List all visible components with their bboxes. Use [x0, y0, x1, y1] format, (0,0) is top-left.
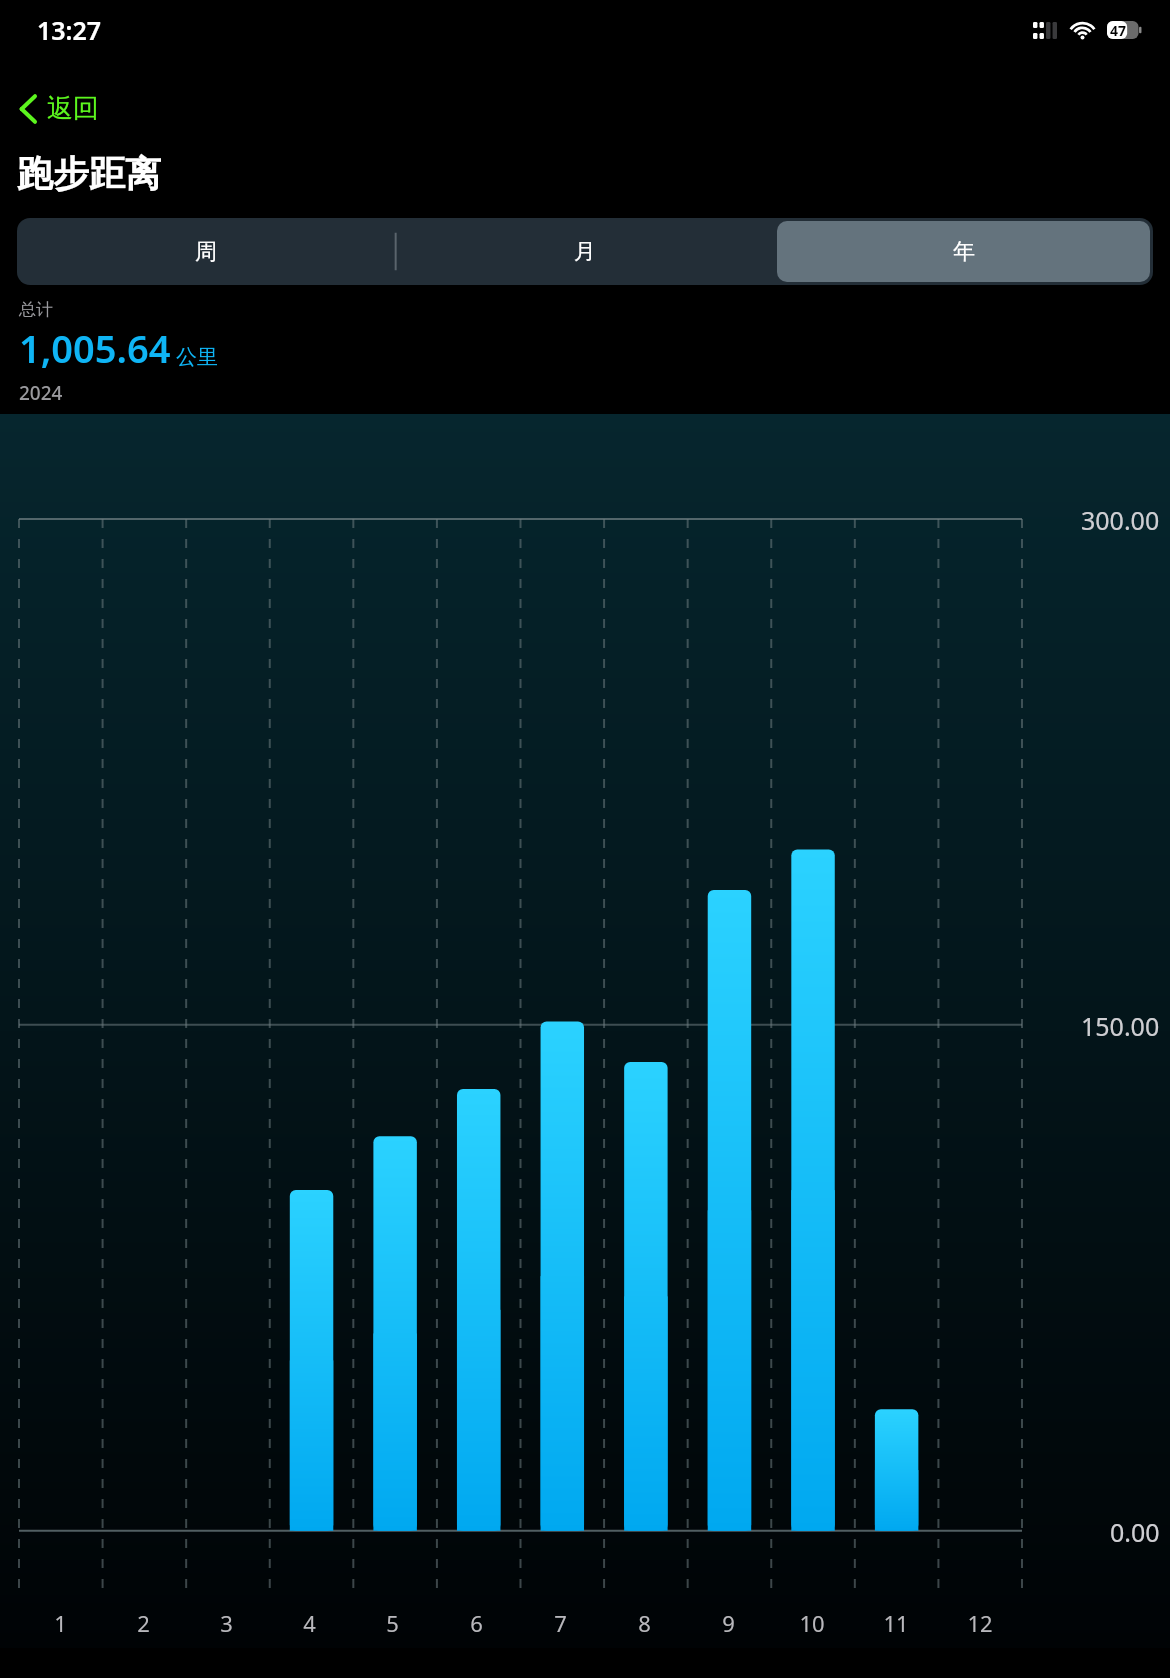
staticText: 3	[220, 1608, 233, 1638]
staticText: 1	[54, 1608, 67, 1638]
staticText: 1,005.64	[19, 322, 171, 374]
staticText: 12	[967, 1608, 993, 1638]
staticText: 5	[386, 1608, 399, 1638]
staticText: 47	[1110, 21, 1127, 39]
staticText: 公里	[176, 344, 218, 370]
staticText: 6	[470, 1608, 483, 1638]
staticText: 2	[137, 1608, 150, 1638]
staticText: 150.00	[1081, 1009, 1160, 1043]
staticText: 7	[554, 1608, 567, 1638]
staticText: 月	[574, 238, 596, 266]
button[interactable]: 月	[398, 221, 771, 282]
staticText: 13:27	[37, 13, 102, 47]
staticText: 年	[953, 238, 975, 266]
staticText: 2024	[19, 380, 63, 406]
button[interactable]: 年	[777, 221, 1150, 282]
staticText: 跑步距离	[17, 151, 161, 196]
button[interactable]: 返回	[10, 88, 107, 129]
staticText: 11	[883, 1608, 909, 1638]
staticText: 10	[799, 1608, 825, 1638]
staticText: 300.00	[1081, 503, 1160, 537]
staticText: 9	[722, 1608, 735, 1638]
staticText: 总计	[19, 299, 53, 320]
staticText: 周	[195, 238, 217, 266]
staticText: 返回	[47, 92, 99, 125]
staticText: 0.00	[1110, 1515, 1160, 1549]
staticText: 4	[303, 1608, 316, 1638]
staticText: 8	[638, 1608, 651, 1638]
button[interactable]: 周	[20, 221, 392, 282]
